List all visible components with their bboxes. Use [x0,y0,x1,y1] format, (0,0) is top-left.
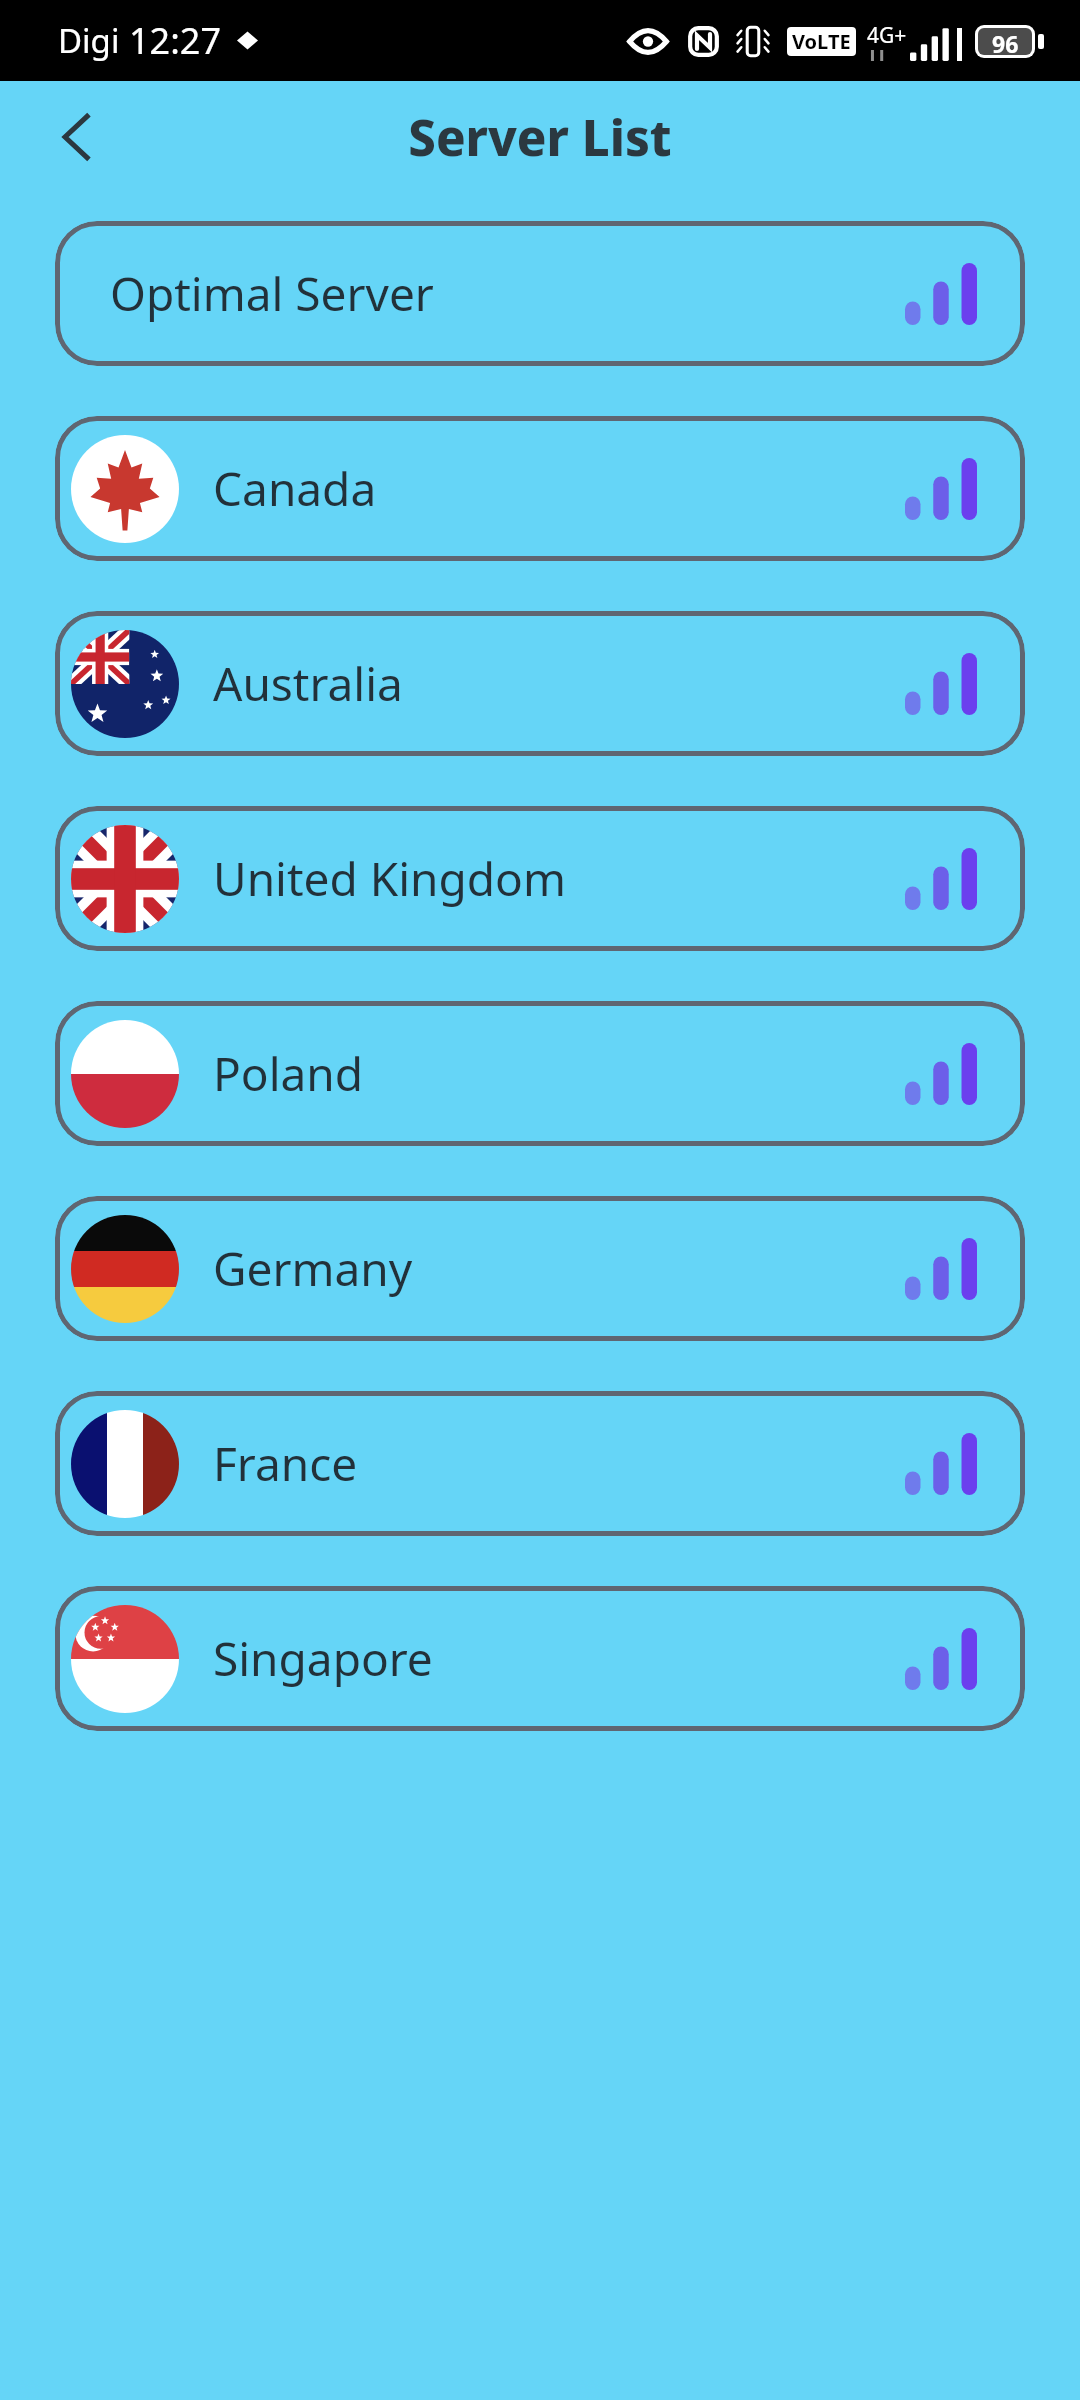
staticText: France [213,1432,358,1495]
button[interactable]: France [55,1391,1025,1536]
button[interactable]: Australia [55,611,1025,756]
button[interactable]: Poland [55,1001,1025,1146]
button[interactable]: Singapore [55,1586,1025,1731]
staticText: Australia [213,652,403,715]
button[interactable]: Germany [55,1196,1025,1341]
staticText: Optimal Server [110,262,434,325]
staticText: Singapore [213,1627,433,1690]
staticText: Poland [213,1042,364,1105]
staticText: United Kingdom [213,847,566,910]
staticText: 96 [992,28,1019,55]
button[interactable]: Optimal Server [55,221,1025,366]
staticText: 12:27 [129,16,222,65]
button[interactable]: United Kingdom [55,806,1025,951]
button[interactable]: Canada [55,416,1025,561]
staticText: Canada [213,457,377,520]
staticText: Germany [213,1237,413,1300]
button[interactable]: Back [38,98,116,176]
staticText: Server List [408,104,672,171]
staticText: Digi [58,18,120,63]
staticText: VoLTE [792,28,851,55]
staticText: 4G+ [867,21,907,50]
